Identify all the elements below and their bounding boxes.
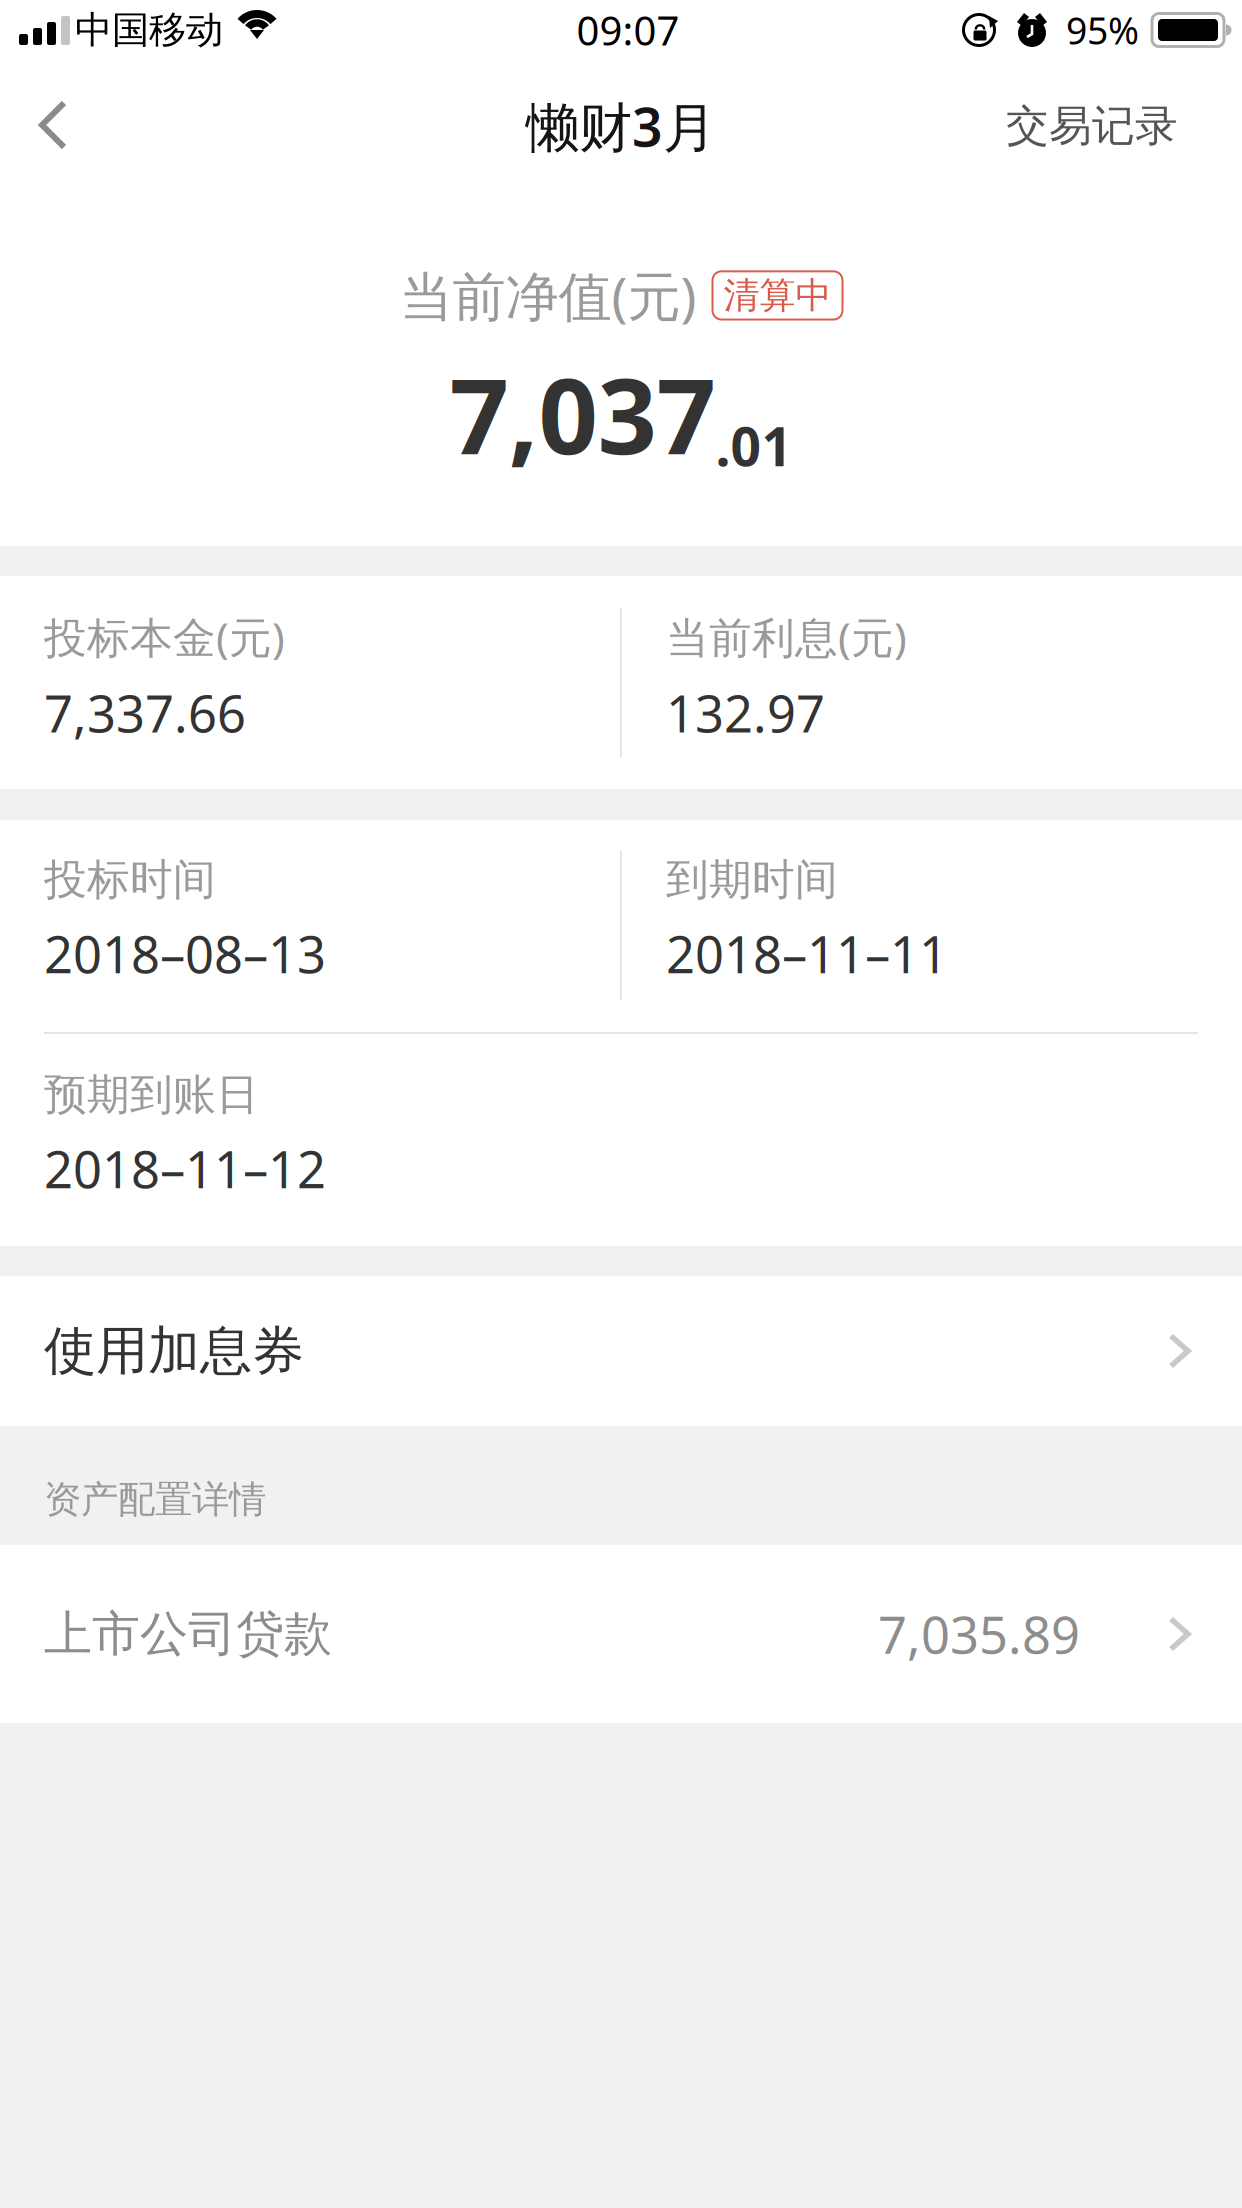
staticText: 资产配置详情: [44, 1477, 266, 1522]
staticText: 中国移动: [75, 7, 223, 53]
staticText: 使用加息券: [44, 1319, 304, 1383]
staticText: 上市公司贷款: [44, 1604, 332, 1663]
staticText: 7,337.66: [44, 679, 246, 746]
staticText: 09:07: [576, 3, 679, 56]
staticText: 7,037: [449, 345, 715, 483]
staticText: 当前净值(元): [399, 260, 696, 331]
staticText: .01: [715, 410, 792, 481]
staticText: 132.97: [666, 679, 825, 746]
staticText: 投标本金(元): [44, 608, 285, 665]
staticText: 2018–08–13: [44, 920, 326, 987]
staticText: 懒财3月: [526, 91, 716, 161]
staticText: 95%: [1066, 5, 1139, 55]
button[interactable]: 使用加息券: [0, 1276, 1242, 1426]
staticText: 投标时间: [44, 854, 216, 906]
staticText: 清算中: [723, 273, 831, 317]
staticText: 2018–11–11: [666, 920, 948, 987]
button[interactable]: Back: [0, 60, 97, 192]
staticText: 交易记录: [1006, 100, 1178, 152]
staticText: 当前利息(元): [666, 608, 907, 665]
staticText: 预期到账日: [44, 1069, 259, 1121]
staticText: 到期时间: [666, 854, 838, 906]
staticText: 2018–11–12: [44, 1135, 326, 1202]
button[interactable]: 交易记录: [976, 60, 1242, 192]
staticText: 7,035.89: [878, 1600, 1080, 1668]
button[interactable]: 上市公司贷款: [0, 1545, 1242, 1723]
